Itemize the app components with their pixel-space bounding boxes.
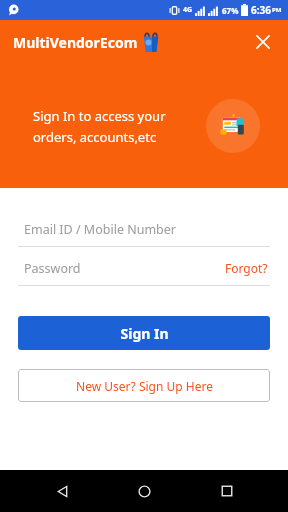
staticText: Email ID / Mobile Number [24, 221, 177, 238]
staticText: PM [272, 6, 282, 14]
staticText: New User? Sign Up Here [76, 378, 213, 394]
staticText: Sign In to access your [33, 107, 166, 125]
button[interactable]: Home [123, 470, 165, 512]
staticText: orders, accounts,etc [33, 128, 157, 146]
staticText: 6:36 [251, 3, 271, 17]
staticText: Password [24, 260, 81, 277]
button[interactable]: New User? Sign Up Here [18, 369, 270, 402]
button[interactable]: Sign In [18, 316, 270, 350]
button[interactable]: Email ID / Mobile Number [18, 212, 270, 246]
button[interactable]: Password [18, 251, 225, 285]
staticText: MultiVendorEcom [13, 33, 138, 52]
staticText: Sign In [120, 324, 169, 343]
button[interactable]: Recent apps [206, 470, 248, 512]
button[interactable]: Close [248, 27, 278, 57]
staticText: 4G [183, 5, 193, 15]
staticText: Forgot? [225, 260, 268, 276]
staticText: 67% [222, 5, 239, 16]
button[interactable]: Forgot? [225, 251, 268, 285]
button[interactable]: Back [41, 470, 83, 512]
